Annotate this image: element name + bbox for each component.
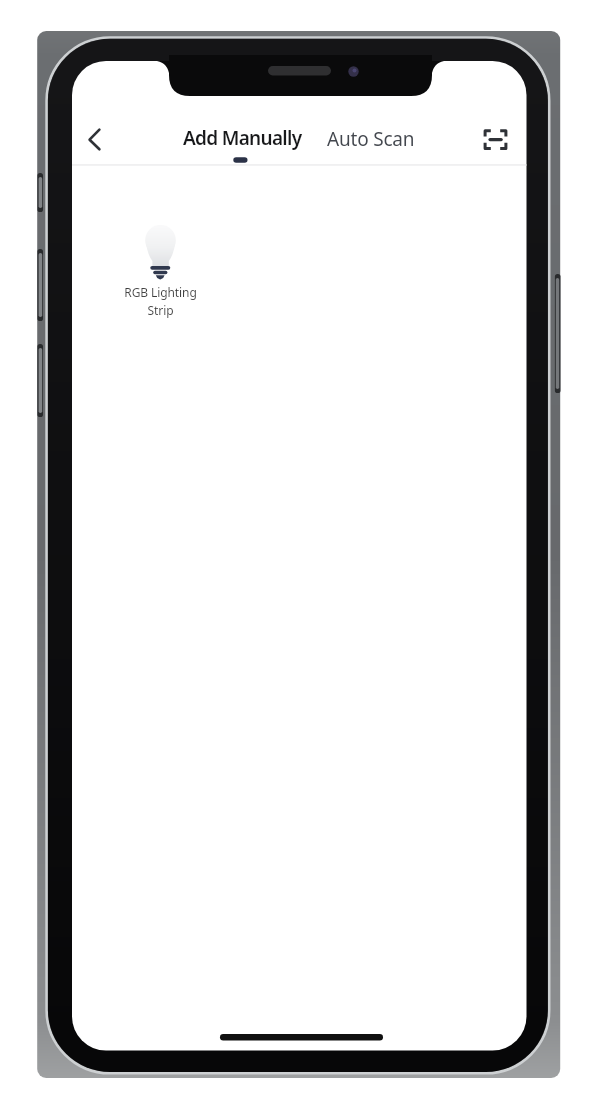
button[interactable]: Auto Scan [306, 118, 436, 164]
button[interactable] [477, 122, 515, 158]
staticText: Add Manually [183, 125, 302, 151]
button[interactable] [81, 122, 117, 158]
staticText: Auto Scan [327, 126, 415, 152]
staticText: RGB Lighting Strip [124, 284, 197, 318]
button[interactable]: RGB Lighting Strip [106, 216, 215, 324]
button[interactable]: Add Manually [172, 118, 312, 164]
